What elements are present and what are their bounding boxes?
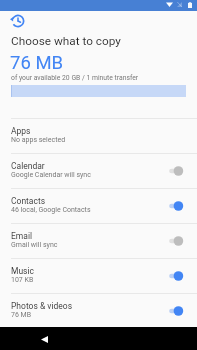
staticText: Contacts [11,196,46,206]
other: Restore [11,14,25,28]
button[interactable]: Toggle [165,267,189,285]
staticText: Choose what to copy [11,34,121,48]
button[interactable]: Contacts [0,189,197,223]
staticText: 46 local, Google Contacts [11,206,91,214]
button[interactable]: Back [32,331,56,347]
staticText: 76 MB [11,311,32,319]
staticText: Calendar [11,161,45,171]
button[interactable]: Apps [0,119,197,153]
button[interactable]: Toggle [165,197,189,215]
staticText: 76 MB [10,52,64,74]
staticText: of your available 20 GB / 1 minute trans… [11,74,139,82]
button[interactable]: Photos & videos [0,294,197,327]
staticText: Apps [11,126,31,136]
staticText: 107 KB [11,276,34,284]
staticText: Gmail will sync [11,241,58,249]
button[interactable]: Email [0,224,197,258]
button[interactable]: Toggle [165,302,189,320]
button[interactable]: Calendar [0,154,197,188]
staticText: Music [11,266,35,276]
staticText: No apps selected [11,136,66,144]
staticText: Photos & videos [11,301,73,311]
staticText: Email [11,231,33,241]
button[interactable]: Toggle [165,232,189,250]
button[interactable]: Music [0,259,197,293]
staticText: Google Calendar will sync [11,171,91,179]
button[interactable]: Toggle [165,162,189,180]
